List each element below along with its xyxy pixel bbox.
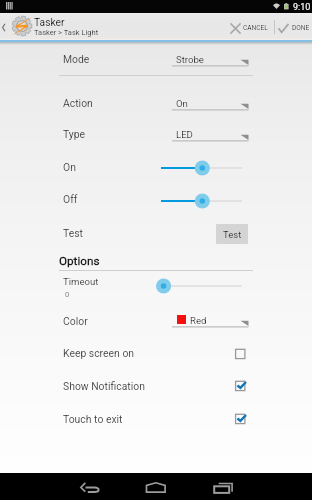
staticText: On [63, 161, 76, 173]
staticText: Mode [63, 53, 90, 65]
staticText: Off [63, 193, 78, 205]
staticText: Options [59, 254, 100, 268]
button[interactable]: Checked [228, 373, 253, 399]
staticText: Keep screen on [63, 347, 135, 359]
button[interactable] [0, 370, 312, 402]
staticText: Test [223, 229, 242, 240]
staticText: CANCEL [243, 24, 268, 32]
staticText: Color [63, 315, 88, 327]
button[interactable] [154, 275, 250, 297]
button[interactable] [154, 190, 250, 212]
button[interactable]: Back [71, 473, 107, 500]
staticText: Action [63, 97, 93, 109]
button[interactable]: Checked [228, 406, 253, 432]
button[interactable] [154, 157, 250, 179]
staticText: Type [63, 128, 86, 140]
button[interactable] [227, 13, 270, 40]
button[interactable] [0, 403, 312, 435]
button[interactable] [0, 338, 312, 370]
staticText: 9:10 [293, 2, 311, 13]
staticText: 0 [65, 290, 70, 299]
button[interactable]: Navigate up [0, 13, 12, 40]
button[interactable] [0, 119, 312, 151]
staticText: On [176, 98, 188, 109]
button[interactable]: Home [137, 473, 173, 500]
button[interactable] [0, 305, 312, 337]
button[interactable] [0, 151, 312, 183]
staticText: Tasker [34, 16, 65, 28]
button[interactable]: Unchecked [228, 341, 253, 367]
button[interactable] [0, 218, 312, 250]
button[interactable]: Red [170, 308, 250, 334]
staticText: Tasker > Task Light [34, 28, 99, 37]
staticText: DONE [292, 24, 310, 32]
button[interactable] [0, 184, 312, 216]
staticText: Timeout [63, 276, 99, 287]
staticText: LED [176, 129, 193, 140]
button[interactable] [0, 88, 312, 120]
button[interactable] [0, 272, 312, 304]
staticText: Test [63, 227, 83, 239]
staticText: Show Notification [63, 380, 145, 392]
button[interactable]: Test [216, 224, 248, 244]
button[interactable]: LED [170, 122, 250, 148]
button[interactable] [276, 13, 312, 40]
button[interactable]: Recent apps [203, 473, 239, 500]
staticText: Red [190, 315, 207, 326]
button[interactable] [0, 44, 312, 76]
button[interactable]: On [170, 91, 250, 117]
staticText: Strobe [176, 54, 204, 65]
button[interactable]: Strobe [170, 47, 250, 73]
staticText: Touch to exit [63, 413, 123, 425]
